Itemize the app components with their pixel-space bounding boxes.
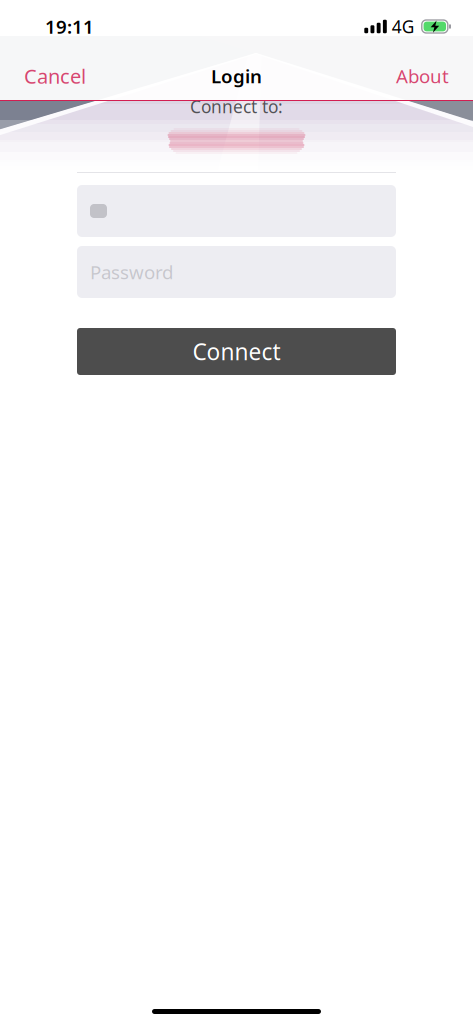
staticText: Connect <box>192 336 280 366</box>
staticText: 19:11 <box>45 14 94 39</box>
button[interactable]: About <box>396 64 449 88</box>
staticText: Connect to: <box>190 95 283 118</box>
staticText: Login <box>211 64 262 88</box>
staticText: Cancel <box>24 63 86 89</box>
staticText: About <box>396 64 449 88</box>
staticText: 4G <box>392 15 415 38</box>
button[interactable]: Cancel <box>24 63 86 89</box>
button[interactable]: Connect <box>77 328 396 375</box>
button[interactable]: Username <box>77 185 396 237</box>
button[interactable]: Password <box>77 246 396 298</box>
staticText: Password <box>90 260 173 284</box>
